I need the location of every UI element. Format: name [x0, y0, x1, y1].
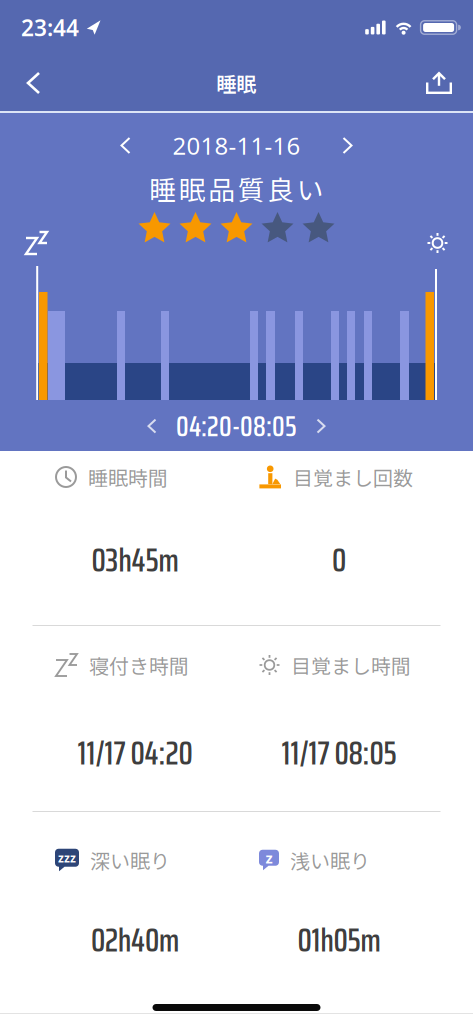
- staticText: 04:20-08:05: [176, 403, 297, 449]
- staticText: 目覚まし時間: [291, 650, 411, 679]
- staticText: 02h40m: [91, 914, 179, 966]
- staticText: 深い眠り: [90, 845, 170, 874]
- button[interactable]: Previous segment: [139, 411, 164, 442]
- staticText: 寝付き時間: [89, 650, 189, 679]
- staticText: 浅い眠り: [290, 845, 370, 874]
- staticText: 目覚まし回数: [293, 462, 413, 491]
- button[interactable]: Next day: [334, 129, 360, 162]
- staticText: 03h45m: [91, 534, 178, 586]
- button[interactable]: Back: [0, 56, 40, 110]
- button[interactable]: Next segment: [308, 411, 333, 442]
- staticText: 睡眠: [216, 68, 256, 97]
- staticText: 2018-11-16: [172, 130, 300, 161]
- staticText: z: [265, 848, 272, 867]
- staticText: 睡眠時間: [88, 462, 168, 491]
- staticText: 11/17 04:20: [77, 727, 192, 779]
- staticText: 睡眠品質良い: [149, 169, 324, 208]
- button[interactable]: Previous day: [112, 129, 138, 162]
- staticText: 23:44: [21, 12, 79, 42]
- staticText: 01h05m: [297, 914, 380, 966]
- button[interactable]: Share: [426, 56, 473, 110]
- staticText: zzz: [58, 850, 76, 866]
- staticText: 11/17 08:05: [281, 727, 396, 779]
- staticText: 0: [332, 534, 346, 586]
